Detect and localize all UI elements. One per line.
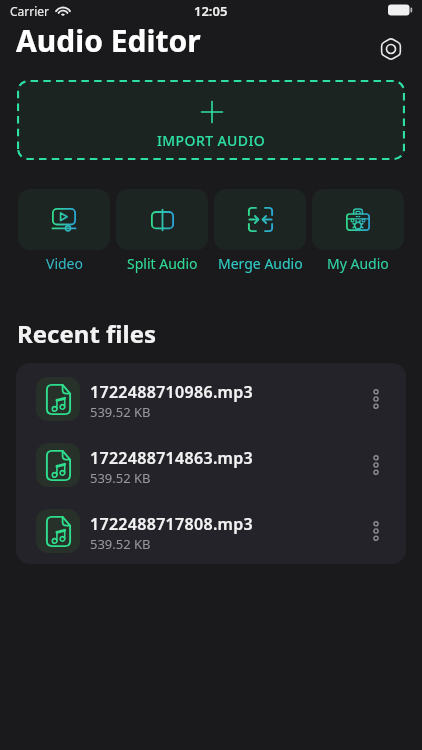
staticText: 539.52 KB [90,535,151,553]
button[interactable]: My Audio [312,189,404,273]
button[interactable]: Split Audio [116,189,208,273]
button[interactable]: 1722488714863.mp3 [16,432,406,498]
staticText: Audio Editor [16,20,201,60]
button[interactable] [372,389,380,409]
button[interactable]: Merge Audio [214,189,306,273]
staticText: My Audio [327,254,389,273]
staticText: 539.52 KB [90,403,151,421]
button[interactable]: 1722488717808.mp3 [16,498,406,564]
staticText: Video [46,254,83,273]
button[interactable]: IMPORT AUDIO [17,80,405,160]
button[interactable]: Video [18,189,110,273]
staticText: Split Audio [127,254,198,273]
staticText: 1722488717808.mp3 [90,513,254,535]
staticText: Merge Audio [218,254,303,273]
staticText: Carrier [10,3,50,19]
staticText: IMPORT AUDIO [157,131,266,150]
button[interactable] [372,521,380,541]
staticText: Recent files [17,317,157,350]
button[interactable]: 1722488710986.mp3 [16,366,406,432]
button[interactable] [376,34,406,64]
staticText: 1722488714863.mp3 [90,447,254,469]
staticText: 539.52 KB [90,469,151,487]
staticText: 1722488710986.mp3 [90,381,254,403]
button[interactable] [372,455,380,475]
staticText: 12:05 [194,2,228,20]
